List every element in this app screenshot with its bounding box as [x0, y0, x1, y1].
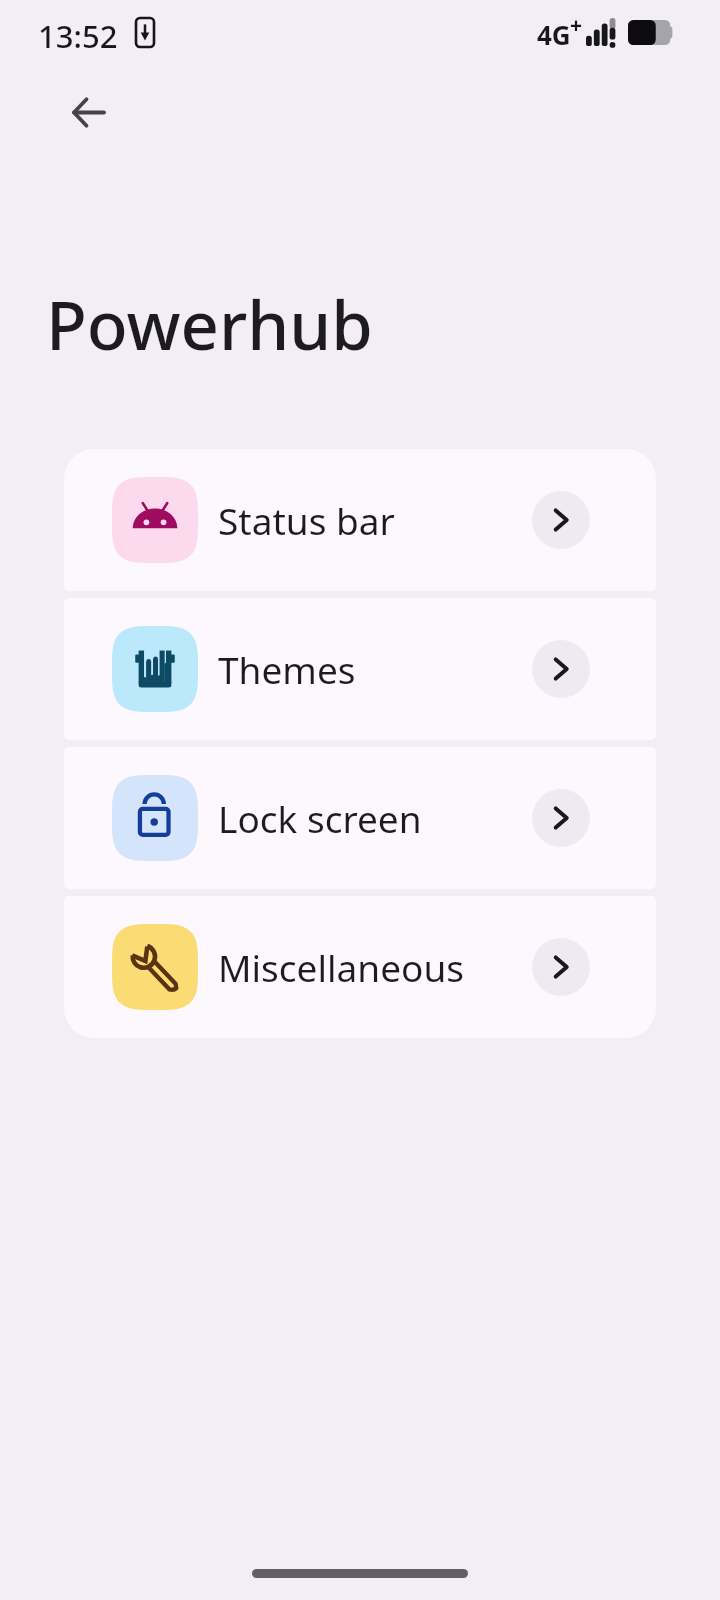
staticText: 13:52 — [38, 15, 118, 57]
staticText: Themes — [218, 644, 356, 694]
button[interactable]: Themes — [64, 598, 656, 740]
staticText: Status bar — [218, 495, 395, 545]
button[interactable]: Open Status bar — [532, 491, 590, 549]
button[interactable]: Lock screen — [64, 747, 656, 889]
button[interactable]: Open Themes — [532, 640, 590, 698]
staticText: Miscellaneous — [218, 942, 465, 992]
staticText: Lock screen — [218, 793, 422, 843]
staticText: 4G — [537, 17, 571, 52]
button[interactable]: Open Lock screen — [532, 789, 590, 847]
staticText: Powerhub — [46, 278, 373, 369]
staticText: + — [570, 11, 583, 40]
button[interactable]: Open Miscellaneous — [532, 938, 590, 996]
button[interactable]: Status bar — [64, 449, 656, 591]
button[interactable]: Back — [64, 88, 112, 136]
button[interactable]: Miscellaneous — [64, 896, 656, 1038]
